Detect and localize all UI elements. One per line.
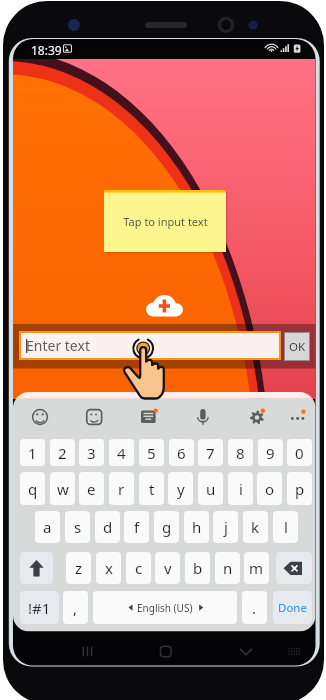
staticText: o <box>265 479 275 499</box>
button[interactable]: Stickers <box>81 404 107 430</box>
staticText: e <box>87 479 96 499</box>
button[interactable]: More options <box>285 404 311 430</box>
button[interactable]: r <box>109 472 134 505</box>
staticText: j <box>224 517 228 537</box>
button[interactable]: a <box>35 511 60 543</box>
staticText: w <box>57 479 69 499</box>
staticText: , <box>73 598 78 618</box>
button[interactable]: Voice input <box>190 404 216 430</box>
button[interactable]: 2 <box>50 439 75 466</box>
staticText: q <box>28 479 38 499</box>
staticText: 0 <box>295 443 304 463</box>
staticText: z <box>75 558 83 578</box>
button[interactable]: q <box>20 472 45 505</box>
button[interactable]: 7 <box>198 439 223 466</box>
button[interactable]: c <box>126 552 151 584</box>
staticText: 7 <box>206 443 215 463</box>
button[interactable]: Change keyboard <box>281 636 307 662</box>
button[interactable]: x <box>96 552 121 584</box>
button[interactable]: Settings <box>244 404 270 430</box>
button[interactable]: . <box>242 591 267 624</box>
button[interactable]: Enter text <box>21 333 279 358</box>
staticText: Done <box>278 600 307 616</box>
staticText: v <box>164 558 172 578</box>
button[interactable]: g <box>154 511 179 543</box>
button[interactable]: b <box>185 552 210 584</box>
button[interactable]: j <box>213 511 238 543</box>
staticText: 8 <box>236 443 245 463</box>
staticText: p <box>295 479 305 499</box>
button[interactable]: Home <box>152 636 180 662</box>
staticText: b <box>193 558 203 578</box>
button[interactable]: , <box>63 591 88 624</box>
button[interactable]: Done <box>273 591 312 624</box>
staticText: k <box>251 517 260 537</box>
button[interactable]: m <box>244 552 269 584</box>
staticText: x <box>105 558 113 578</box>
staticText: 2 <box>58 443 67 463</box>
button[interactable]: i <box>228 472 253 505</box>
staticText: a <box>43 517 52 537</box>
button[interactable]: d <box>95 511 120 543</box>
button[interactable]: u <box>198 472 223 505</box>
button[interactable]: 8 <box>228 439 253 466</box>
staticText: 6 <box>177 443 186 463</box>
staticText: . <box>252 598 257 618</box>
staticText: n <box>223 558 233 578</box>
button[interactable]: Recents <box>73 636 101 662</box>
staticText: 9 <box>266 443 275 463</box>
staticText: f <box>134 517 140 537</box>
button[interactable]: Tap to input text <box>104 190 226 252</box>
button[interactable]: 5 <box>139 439 164 466</box>
button[interactable]: s <box>65 511 90 543</box>
button[interactable]: !#1 <box>20 591 59 624</box>
button[interactable]: Emoji <box>27 404 53 430</box>
button[interactable]: OK <box>285 333 309 360</box>
button[interactable]: y <box>168 472 193 505</box>
button[interactable]: v <box>155 552 180 584</box>
staticText: l <box>284 517 288 537</box>
button[interactable] <box>20 552 53 584</box>
button[interactable]: 9 <box>258 439 283 466</box>
staticText: c <box>135 558 143 578</box>
button[interactable]: o <box>257 472 282 505</box>
button[interactable] <box>276 552 312 584</box>
button[interactable]: e <box>79 472 104 505</box>
button[interactable]: 0 <box>287 439 312 466</box>
button[interactable]: p <box>287 472 312 505</box>
staticText: Enter text <box>26 336 90 355</box>
button[interactable]: Clipboard <box>135 404 161 430</box>
staticText: s <box>74 517 82 537</box>
button[interactable]: n <box>215 552 240 584</box>
staticText: 18:39 <box>31 42 62 58</box>
staticText: d <box>103 517 113 537</box>
staticText: Tap to input text <box>123 214 208 229</box>
button[interactable]: z <box>66 552 91 584</box>
staticText: g <box>162 517 172 537</box>
staticText: t <box>149 479 155 499</box>
staticText: 5 <box>147 443 156 463</box>
staticText: h <box>192 517 202 537</box>
button[interactable]: l <box>273 511 298 543</box>
button[interactable]: 3 <box>79 439 104 466</box>
staticText: y <box>177 479 185 499</box>
button[interactable]: k <box>243 511 268 543</box>
staticText: 3 <box>87 443 96 463</box>
staticText: 4 <box>117 443 126 463</box>
button[interactable]: 1 <box>20 439 45 466</box>
staticText: i <box>239 479 243 499</box>
staticText: r <box>118 479 125 499</box>
button[interactable]: 4 <box>109 439 134 466</box>
button[interactable]: Hide keyboard <box>232 636 260 662</box>
button[interactable]: t <box>139 472 164 505</box>
button[interactable]: f <box>124 511 149 543</box>
staticText: u <box>206 479 216 499</box>
button[interactable]: English (US) <box>93 591 237 624</box>
staticText: OK <box>289 339 306 355</box>
button[interactable]: w <box>50 472 75 505</box>
staticText: !#1 <box>28 598 51 618</box>
button[interactable]: h <box>184 511 209 543</box>
button[interactable]: 6 <box>169 439 194 466</box>
staticText: English (US) <box>137 601 193 615</box>
staticText: 1 <box>28 443 37 463</box>
